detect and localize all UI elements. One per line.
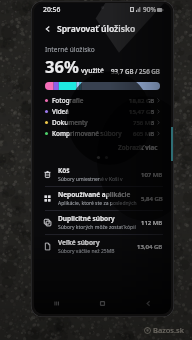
- button[interactable]: Dokumenty: [34, 117, 171, 128]
- staticText: Videá: [52, 107, 69, 116]
- staticText: využité: [81, 66, 105, 75]
- button[interactable]: Zobraziť viac: [116, 142, 160, 153]
- staticText: Duplicitné súbory: [58, 214, 115, 223]
- button[interactable]: Späť: [41, 22, 54, 35]
- staticText: 20:56: [43, 5, 61, 14]
- staticText: Zobraziť viac: [118, 143, 158, 152]
- staticText: Bazos.sk: [153, 325, 184, 335]
- staticText: 15,47 GB: [129, 108, 155, 116]
- button[interactable]: Nepoužívané aplikácie: [34, 187, 171, 210]
- staticText: 605 MB: [133, 130, 155, 138]
- button[interactable]: Domov: [79, 292, 125, 314]
- button[interactable]: Fotografie: [34, 95, 171, 106]
- button[interactable]: [45, 82, 160, 90]
- staticText: 107 MB: [141, 171, 163, 179]
- staticText: Nepoužívané aplikácie: [58, 190, 131, 199]
- staticText: 90%: [143, 5, 156, 14]
- staticText: Dokumenty: [52, 118, 88, 127]
- button[interactable]: Kôš: [34, 163, 171, 186]
- button[interactable]: Nedávne aplikácie: [34, 292, 79, 314]
- staticText: 13,04 GB: [137, 243, 163, 251]
- button[interactable]: Duplicitné súbory: [34, 211, 171, 234]
- staticText: Súbory umiestnené v Koši v rôznych aplik…: [58, 176, 138, 183]
- staticText: 93,7 GB / 256 GB: [111, 67, 160, 75]
- staticText: 112 MB: [141, 219, 163, 227]
- staticText: Súbory ktorých môže zostať kópií: [58, 224, 136, 231]
- staticText: 36%: [45, 55, 79, 77]
- button[interactable]: Späť: [125, 292, 171, 314]
- staticText: Komprimované súbory: [52, 129, 122, 138]
- staticText: 5,84 GB: [141, 195, 163, 203]
- staticText: Interné úložisko: [45, 45, 95, 54]
- staticText: Súbory väčšie než 25MB: [58, 248, 115, 255]
- staticText: 18,82 GB: [129, 97, 155, 105]
- button[interactable]: Videá: [34, 106, 171, 117]
- staticText: Kôš: [58, 166, 70, 175]
- button[interactable]: Veľké súbory: [34, 235, 171, 258]
- button[interactable]: Komprimované súbory: [34, 128, 171, 139]
- staticText: Aplikácie, ktoré ste za posledných 30 dn…: [58, 200, 138, 207]
- staticText: 756 MB: [133, 119, 155, 127]
- staticText: Spravovať úložisko: [57, 23, 136, 35]
- staticText: Fotografie: [52, 96, 84, 105]
- staticText: Veľké súbory: [58, 238, 100, 247]
